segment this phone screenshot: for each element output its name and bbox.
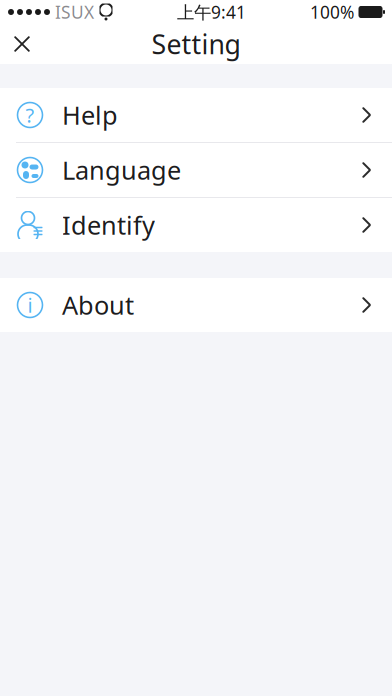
button[interactable]: Language [0, 143, 392, 198]
button[interactable]: Identify [0, 198, 392, 252]
button[interactable]: ? [0, 88, 392, 143]
button[interactable]: i [0, 278, 392, 332]
button[interactable]: Close [0, 24, 44, 64]
staticText: 100% [310, 0, 354, 23]
staticText: ? [25, 102, 34, 128]
staticText: Setting [151, 26, 240, 62]
staticText: 上午9:41 [177, 0, 246, 23]
staticText: ISUX [55, 0, 94, 23]
staticText: Help [62, 98, 118, 132]
staticText: About [62, 288, 134, 322]
staticText: i [27, 292, 32, 318]
staticText: Language [62, 153, 181, 187]
staticText: Identify [62, 208, 155, 242]
